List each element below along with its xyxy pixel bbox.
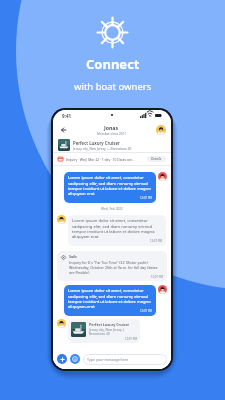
staticText: Inquiry for It's "Far Too Time" (32' Mot… [69,260,163,275]
staticText: Lorem ipsum dolor sit amet, consetetur s… [72,218,162,239]
staticText: 12:07 PM [61,275,163,279]
button[interactable]: Perfect Luxury Cruiser [68,319,140,343]
button[interactable]: Back [58,125,67,134]
button[interactable]: Sails [57,251,167,281]
staticText: Benneteau 40 [89,332,110,336]
staticText: Connect [86,55,140,73]
staticText: Perfect Luxury Cruiser [89,322,130,327]
button[interactable]: Emoji [70,354,80,364]
button[interactable]: Type your message here [83,354,167,365]
staticText: 12:07 PM [68,309,152,313]
staticText: 9:41 [62,113,72,119]
staticText: Inquiry · Wed, Mar 22 · 1 day · 10 Dates… [66,157,135,161]
staticText: 12:07 PM [72,239,162,243]
button[interactable]: Add attachment [57,354,67,364]
button[interactable]: Lorem ipsum dolor sit amet, consetetur s… [64,172,156,203]
button[interactable]: Details [147,156,166,162]
staticText: with boat owners [74,80,152,93]
staticText: Lorem ipsum dolor sit amet, consetetur s… [68,175,152,196]
staticText: Type your message here [87,357,129,362]
staticText: Perfect Luxury Cruiser [73,140,120,146]
staticText: 12:07 PM [68,196,152,200]
staticText: Details [151,157,162,161]
staticText: Sails [69,254,77,259]
staticText: Jonas [104,124,119,131]
staticText: Wed, Feb 2022 [57,207,167,211]
staticText: 12:07 PM [71,337,137,341]
staticText: Lorem ipsum dolor sit amet, consetetur s… [68,288,152,309]
staticText: Jersey city, New Jersey — Benneteau 40 [73,147,132,151]
staticText: Jersey city, New Jersey | [89,328,125,332]
button[interactable]: Lorem ipsum dolor sit amet, consetetur s… [64,285,156,316]
staticText: Member since 2011 [97,132,127,136]
button[interactable]: Lorem ipsum dolor sit amet, consetetur s… [68,215,166,246]
